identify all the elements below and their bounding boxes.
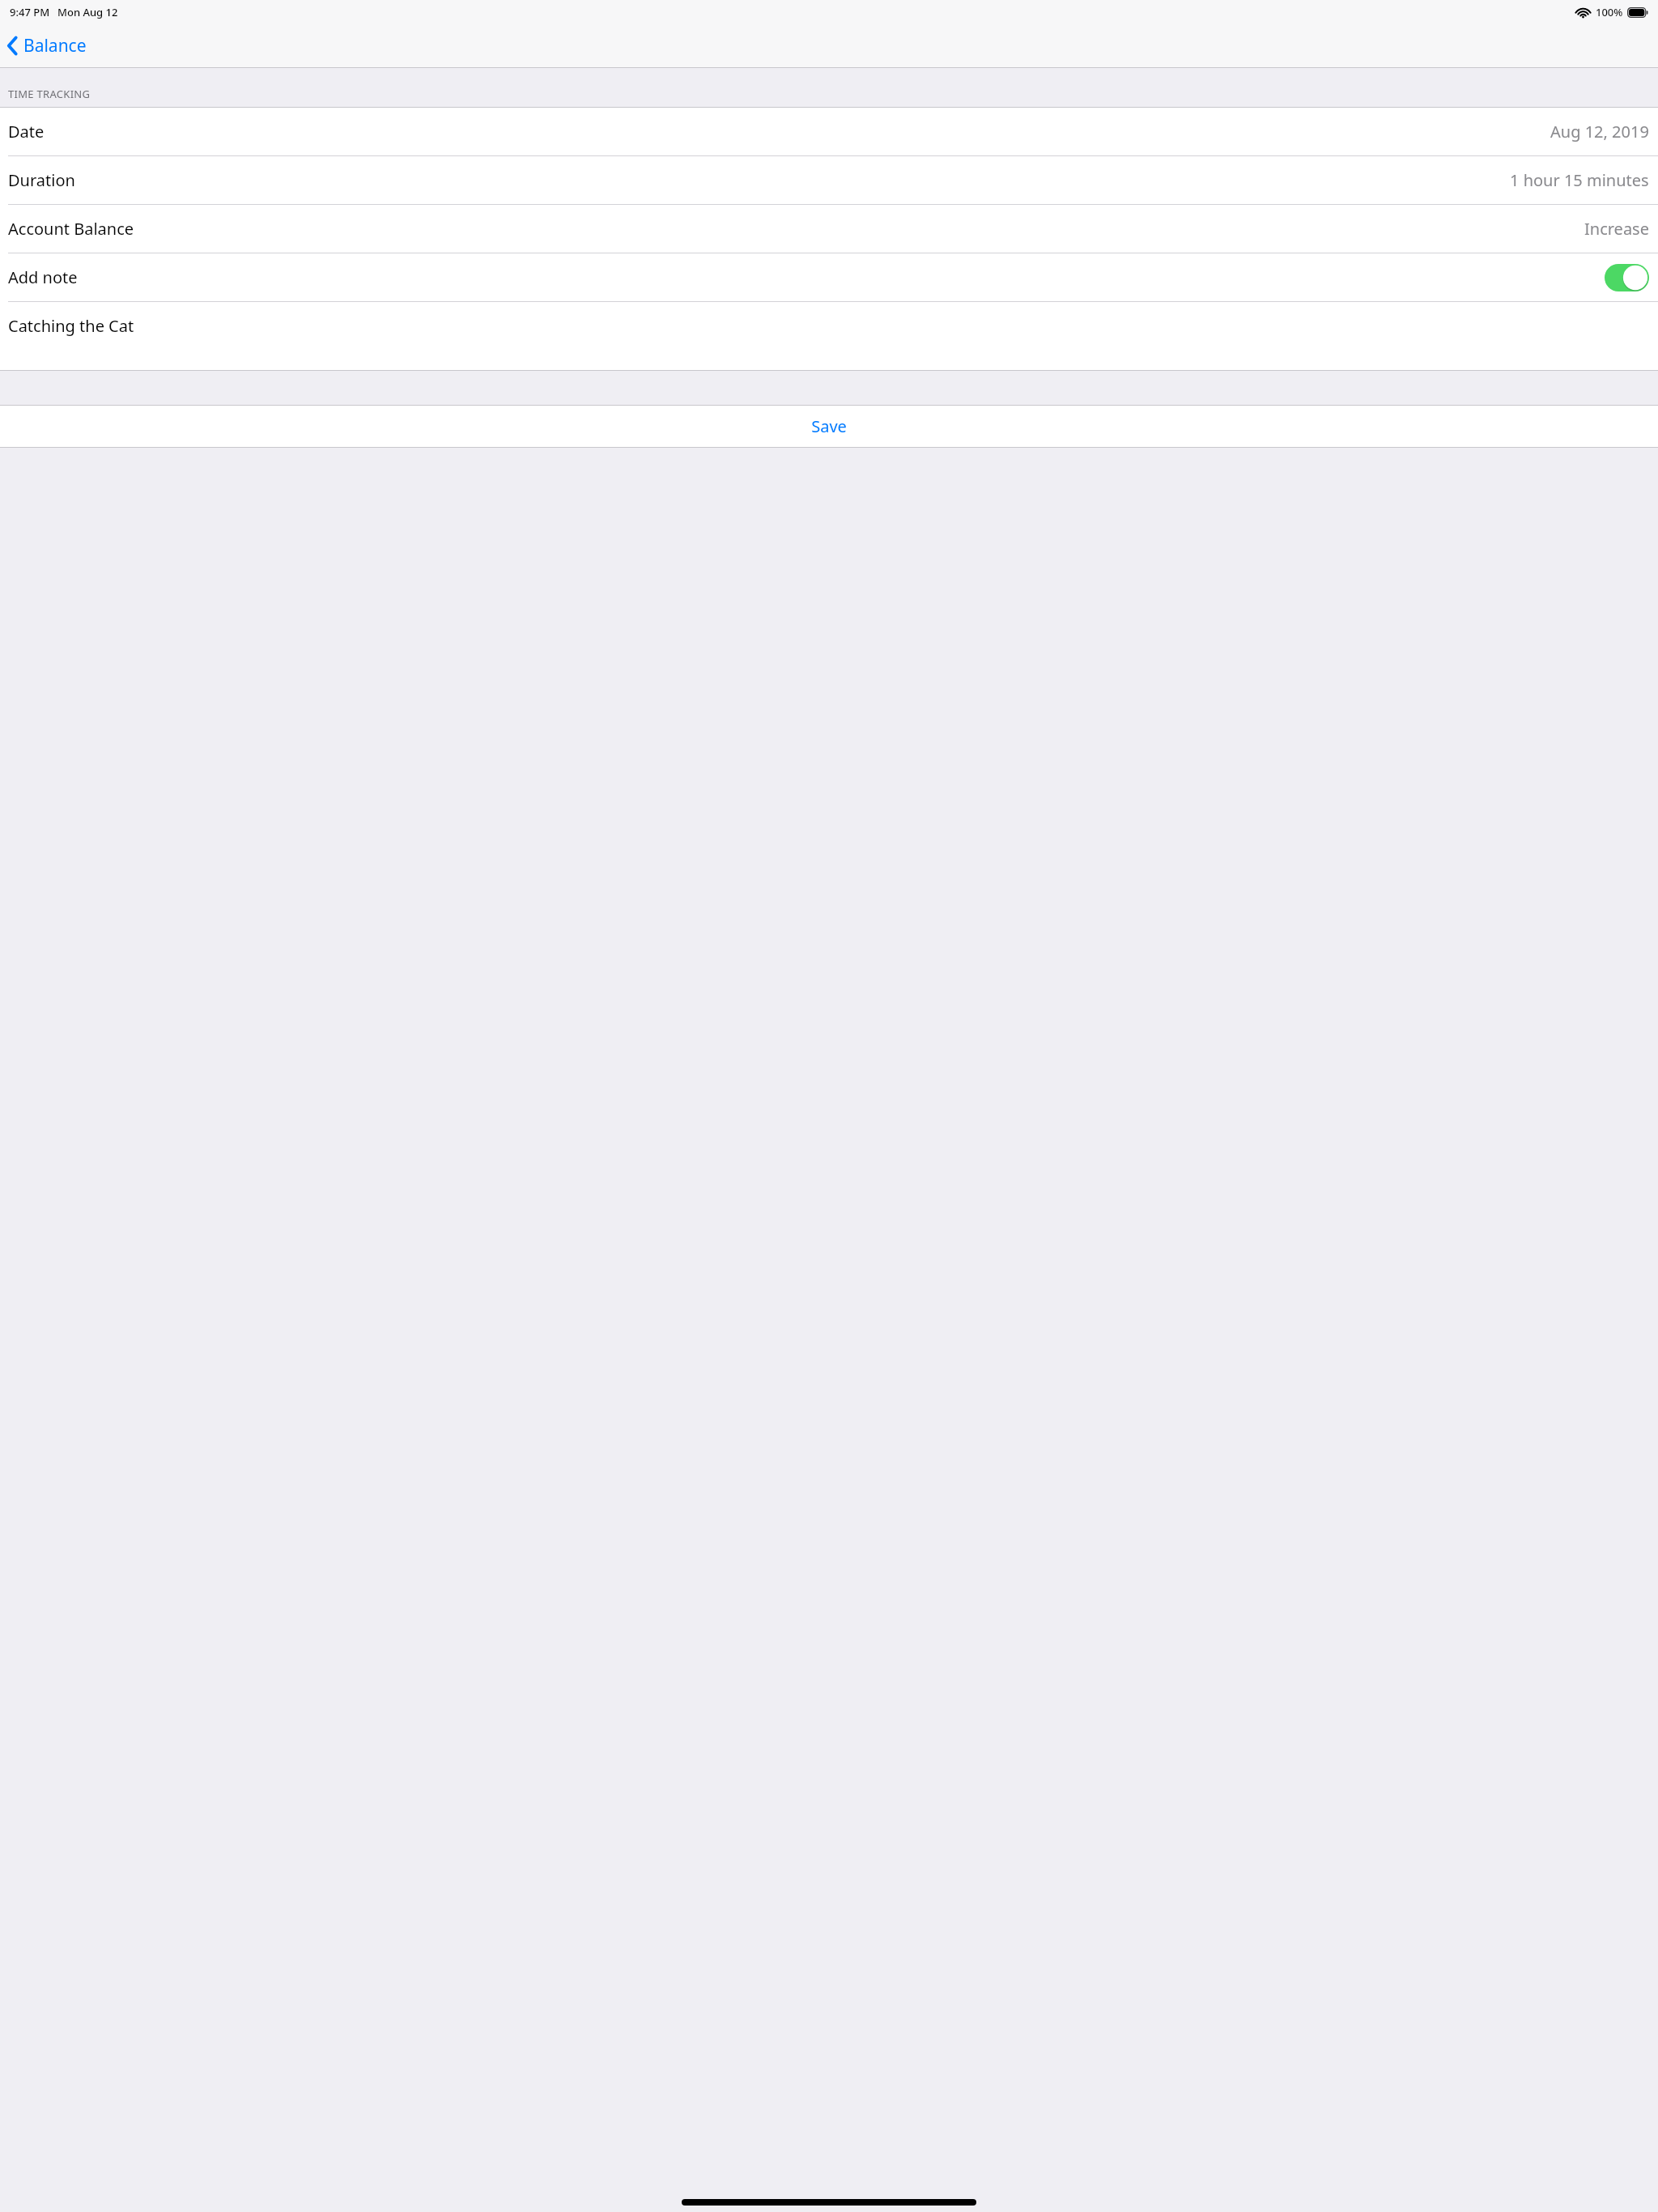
staticText: Save — [811, 415, 847, 437]
staticText: 9:47 PM — [10, 5, 50, 19]
staticText: Balance — [23, 34, 87, 57]
staticText: Aug 12, 2019 — [1550, 121, 1649, 143]
staticText: Add note — [8, 266, 78, 288]
button[interactable]: Save — [0, 406, 1658, 447]
staticText: Date — [8, 121, 45, 143]
staticText: TIME TRACKING — [8, 87, 91, 101]
button[interactable]: Add note toggle, on — [1605, 264, 1649, 291]
button[interactable]: Catching the Cat — [0, 302, 1658, 350]
staticText: 1 hour 15 minutes — [1510, 169, 1649, 191]
staticText: 100% — [1596, 5, 1623, 19]
button[interactable]: Add note — [0, 253, 1658, 301]
staticText: Increase — [1584, 218, 1649, 240]
staticText: Catching the Cat — [8, 315, 134, 337]
button[interactable]: Account Balance — [0, 205, 1658, 253]
staticText: Account Balance — [8, 218, 134, 240]
button[interactable]: Duration — [0, 156, 1658, 204]
button[interactable]: Date — [0, 108, 1658, 155]
button[interactable]: Balance — [0, 31, 95, 61]
staticText: Duration — [8, 169, 75, 191]
staticText: Mon Aug 12 — [57, 5, 118, 19]
